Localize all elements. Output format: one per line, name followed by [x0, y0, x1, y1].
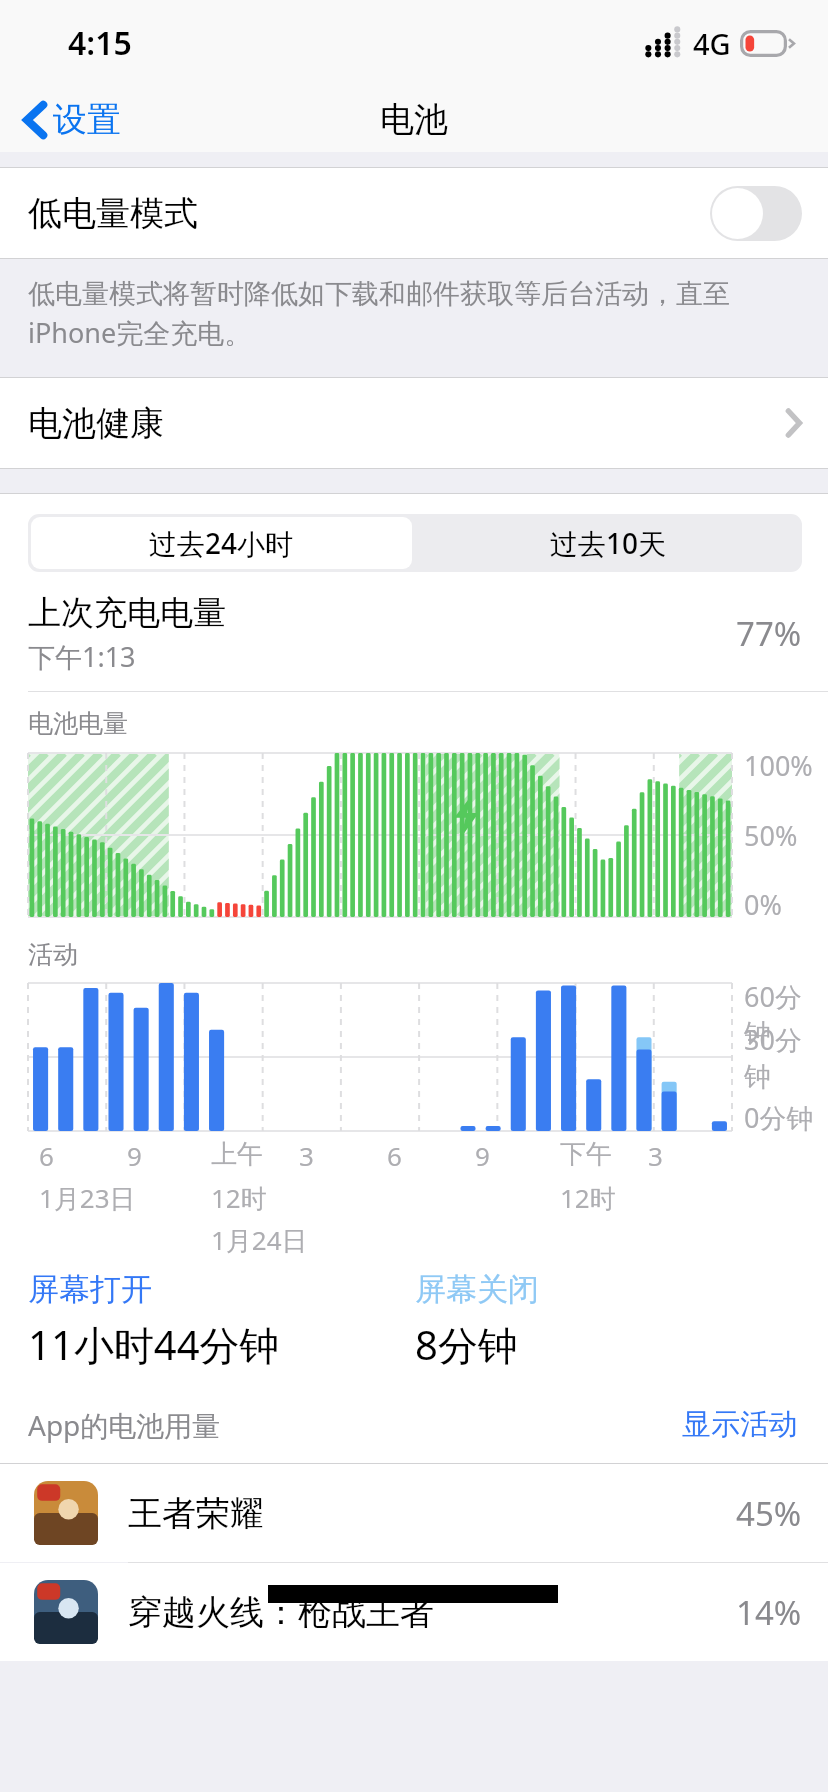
button[interactable]: 返回设置: [16, 90, 129, 149]
staticText: 8分钟: [415, 1317, 518, 1372]
staticText: 4:15: [68, 21, 132, 65]
staticText: 下午1:13: [28, 638, 136, 675]
button[interactable]: 低电量模式: [0, 168, 828, 258]
staticText: 上次充电电量: [28, 592, 226, 634]
staticText: 电池: [380, 98, 448, 141]
staticText: 77%: [736, 611, 802, 656]
staticText: 60分钟: [744, 978, 828, 1051]
staticText: 下午: [560, 1138, 612, 1171]
staticText: 6: [387, 1138, 402, 1173]
staticText: 12时: [560, 1180, 616, 1216]
staticText: 4G: [693, 24, 731, 63]
staticText: 30分钟: [744, 1021, 828, 1094]
staticText: 12时: [211, 1180, 267, 1216]
staticText: 45%: [736, 1491, 802, 1536]
staticText: 0%: [744, 886, 782, 923]
staticText: 3: [648, 1138, 663, 1173]
button[interactable]: 电池健康: [0, 378, 828, 468]
staticText: 过去24小时: [149, 524, 294, 562]
staticText: 0分钟: [744, 1099, 814, 1136]
staticText: 9: [127, 1138, 142, 1173]
staticText: 显示活动: [682, 1406, 798, 1443]
staticText: 上午: [211, 1138, 263, 1171]
staticText: 低电量模式将暂时降低如下载和邮件获取等后台活动，直至 iPhone完全充电。: [28, 277, 730, 351]
staticText: 14%: [736, 1590, 802, 1635]
staticText: 50%: [744, 817, 798, 854]
staticText: 设置: [53, 98, 121, 141]
staticText: 1月24日: [211, 1222, 308, 1258]
staticText: 王者荣耀: [128, 1492, 264, 1535]
staticText: 过去10天: [550, 524, 667, 562]
staticText: 屏幕打开: [28, 1270, 152, 1309]
staticText: 电池电量: [28, 708, 128, 739]
button[interactable]: 王者荣耀: [0, 1464, 828, 1562]
staticText: 低电量模式: [28, 192, 198, 235]
button[interactable]: 低电量模式开关: [710, 186, 802, 241]
staticText: App的电池用量: [28, 1406, 221, 1444]
staticText: 电池健康: [28, 402, 164, 445]
button[interactable]: 穿越火线：枪战王者: [0, 1563, 828, 1661]
button[interactable]: 过去10天: [415, 514, 802, 572]
button[interactable]: 显示活动: [678, 1402, 802, 1447]
staticText: 屏幕关闭: [415, 1270, 539, 1309]
staticText: 9: [475, 1138, 490, 1173]
staticText: 3: [299, 1138, 314, 1173]
staticText: 6: [39, 1138, 54, 1173]
staticText: 11小时44分钟: [28, 1317, 280, 1372]
button[interactable]: 过去24小时: [31, 517, 412, 569]
staticText: 1月23日: [39, 1180, 136, 1216]
staticText: 穿越火线：枪战王者: [128, 1591, 434, 1634]
staticText: 活动: [28, 939, 78, 970]
staticText: 100%: [744, 747, 813, 784]
